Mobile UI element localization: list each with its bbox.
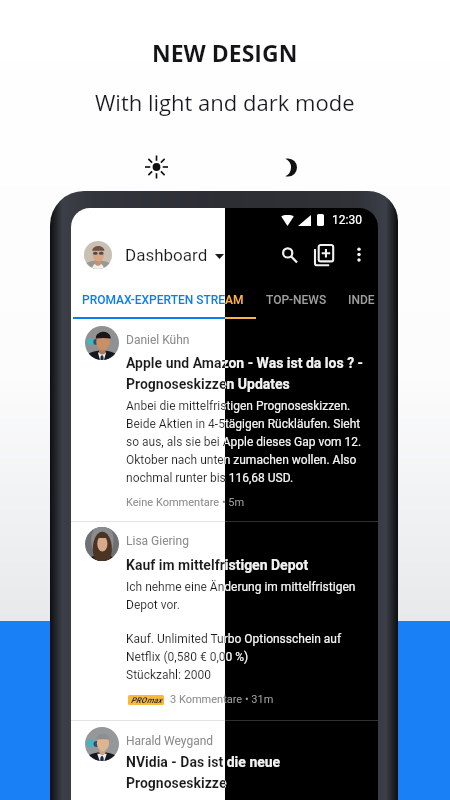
- staticText: PROMAX-EXPERTEN STREAM: [82, 293, 244, 307]
- staticText: PRO: [131, 696, 147, 705]
- staticText: Harald Weygand: [126, 734, 214, 748]
- staticText: INDE: [348, 293, 375, 307]
- staticText: NVidia - Das ist die neue Prognoseskizze: [126, 754, 370, 791]
- button[interactable]: Dashboard: [125, 245, 208, 265]
- staticText: With light and dark mode: [95, 87, 355, 117]
- staticText: INDE: [348, 293, 375, 307]
- button[interactable]: Daniel Kühn: [71, 321, 378, 521]
- staticText: Dashboard: [125, 245, 208, 265]
- button[interactable]: Add to list: [309, 240, 339, 270]
- staticText: NEW DESIGN: [152, 37, 298, 68]
- staticText: Daniel Kühn: [126, 333, 190, 347]
- staticText: NVidia - Das ist die neue Prognoseskizze: [126, 754, 370, 791]
- button[interactable]: INDE: [348, 293, 375, 307]
- button[interactable]: More options: [346, 242, 372, 268]
- staticText: PROMAX-EXPERTEN STREAM: [82, 293, 244, 307]
- staticText: Kauf. Unlimited Turbo Optionsschein auf …: [126, 632, 370, 682]
- staticText: 12:30: [332, 213, 362, 227]
- staticText: Dashboard: [125, 245, 208, 265]
- staticText: 3 Kommentare • 31m: [170, 693, 274, 706]
- button[interactable]: INDE: [348, 293, 375, 307]
- staticText: Daniel Kühn: [126, 333, 190, 347]
- button[interactable]: Daniel Kühn: [71, 321, 378, 521]
- staticText: Lisa Giering: [126, 534, 189, 548]
- staticText: Lisa Giering: [126, 534, 189, 548]
- staticText: Apple und Amazon - Was ist da los ? - Pr…: [126, 355, 370, 392]
- staticText: Keine Kommentare • 5m: [126, 496, 245, 509]
- button[interactable]: More options: [346, 242, 372, 268]
- button[interactable]: Dashboard: [125, 245, 208, 265]
- staticText: Apple und Amazon - Was ist da los ? - Pr…: [126, 355, 370, 392]
- button[interactable]: Harald Weygand: [71, 723, 378, 800]
- button[interactable]: TOP-NEWS: [266, 293, 327, 307]
- button[interactable]: Profile: [84, 241, 112, 269]
- staticText: Kauf im mittelfristigen Depot: [126, 557, 309, 573]
- button[interactable]: Search: [276, 241, 304, 269]
- button[interactable]: PROMAX-EXPERTEN STREAM: [82, 293, 244, 307]
- staticText: Keine Kommentare • 5m: [126, 496, 245, 509]
- button[interactable]: Profile: [84, 241, 112, 269]
- button[interactable]: Lisa Giering: [71, 524, 378, 722]
- staticText: Ich nehme eine Änderung im mittelfristig…: [126, 580, 370, 612]
- staticText: max: [147, 696, 162, 705]
- button[interactable]: Change dashboard: [215, 254, 224, 259]
- button[interactable]: Lisa Giering: [71, 524, 378, 722]
- staticText: Kauf im mittelfristigen Depot: [126, 557, 309, 573]
- staticText: Anbei die mittelfristigen Prognoseskizze…: [126, 399, 370, 485]
- staticText: TOP-NEWS: [266, 293, 327, 307]
- staticText: Harald Weygand: [126, 734, 214, 748]
- staticText: Anbei die mittelfristigen Prognoseskizze…: [126, 399, 370, 485]
- staticText: 12:30: [332, 213, 362, 227]
- button[interactable]: Harald Weygand: [71, 723, 378, 800]
- button[interactable]: Change dashboard: [215, 254, 224, 259]
- staticText: Ich nehme eine Änderung im mittelfristig…: [126, 580, 370, 612]
- button[interactable]: Search: [276, 241, 304, 269]
- staticText: 3 Kommentare • 31m: [170, 693, 274, 706]
- button[interactable]: PROMAX-EXPERTEN STREAM: [82, 293, 244, 307]
- button[interactable]: Add to list: [309, 240, 339, 270]
- staticText: PRO: [131, 696, 147, 705]
- button[interactable]: TOP-NEWS: [266, 293, 327, 307]
- staticText: TOP-NEWS: [266, 293, 327, 307]
- staticText: Kauf. Unlimited Turbo Optionsschein auf …: [126, 632, 370, 682]
- staticText: max: [147, 696, 162, 705]
